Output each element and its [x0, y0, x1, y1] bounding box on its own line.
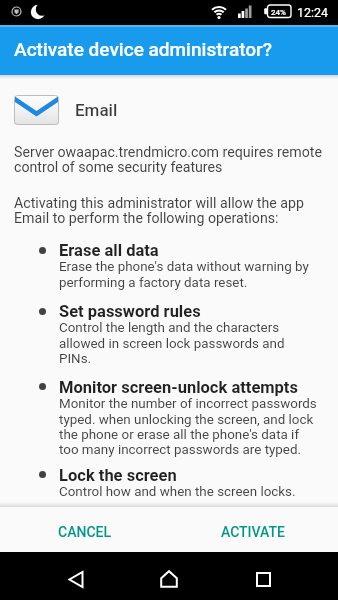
button[interactable]	[52, 555, 100, 600]
button[interactable]: CANCEL	[0, 507, 169, 552]
staticText: Erase the phone's data without warning b…	[59, 259, 309, 290]
staticText: CANCEL	[58, 524, 112, 540]
staticText: Email	[75, 100, 118, 120]
staticText: Monitor screen-unlock attempts	[59, 378, 298, 397]
button[interactable]: ACTIVATE	[169, 507, 338, 552]
staticText: Set password rules	[59, 302, 201, 321]
staticText: Control how and when the screen locks.	[59, 484, 296, 500]
staticText: Activate device administrator?	[14, 38, 273, 60]
staticText: Erase all data	[59, 241, 159, 260]
staticText: Lock the screen	[59, 466, 177, 485]
staticText: 12:24	[297, 5, 329, 20]
staticText: ACTIVATE	[221, 524, 286, 540]
button[interactable]: Email	[14, 95, 118, 125]
staticText: Control the length and the characters al…	[59, 320, 285, 366]
staticText: Monitor the number of incorrect password…	[59, 396, 317, 457]
button[interactable]	[239, 555, 287, 600]
staticText: 24%	[271, 8, 286, 17]
staticText: Activating this administrator will allow…	[14, 195, 305, 227]
staticText: Server owaapac.trendmicro.com requires r…	[14, 144, 322, 176]
button[interactable]	[145, 555, 193, 600]
